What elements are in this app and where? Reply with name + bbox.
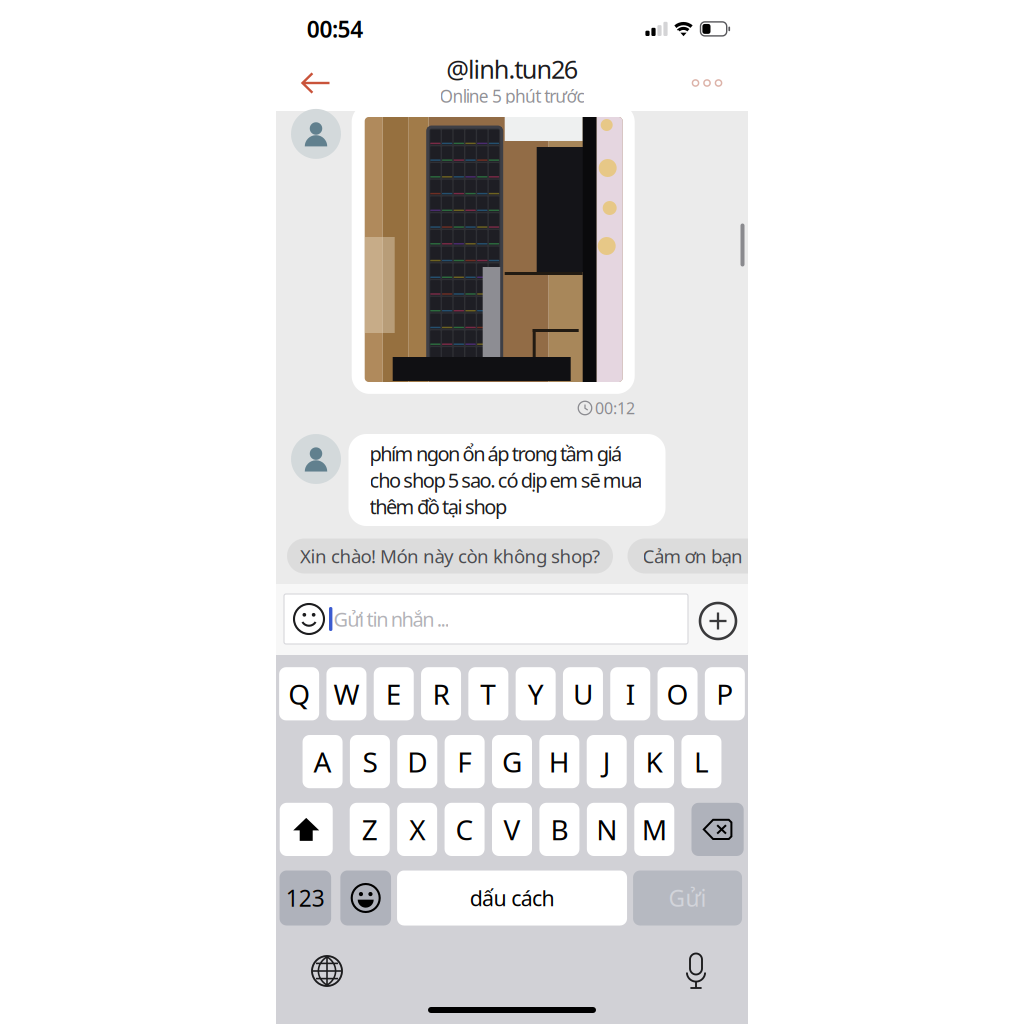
staticText: H [549, 743, 570, 780]
staticText: dấu cách [470, 884, 554, 912]
button[interactable]: N [587, 803, 627, 856]
staticText: N [596, 811, 617, 848]
staticText: J [603, 743, 611, 780]
staticText: V [503, 811, 520, 848]
button[interactable]: E [374, 667, 414, 720]
staticText: phím ngon ổn áp trong tầm giá cho shop 5… [369, 440, 642, 520]
button[interactable]: B [539, 803, 579, 856]
staticText: C [456, 811, 474, 848]
staticText: Y [528, 675, 544, 712]
button[interactable]: Backspace [691, 803, 744, 856]
button[interactable]: Change keyboard [303, 949, 351, 993]
staticText: P [716, 675, 733, 712]
button[interactable]: C [445, 803, 485, 856]
button[interactable]: Back [288, 60, 344, 106]
staticText: G [502, 743, 522, 780]
button[interactable]: I [610, 667, 650, 720]
staticText: I [626, 675, 635, 712]
staticText: T [480, 675, 496, 712]
button[interactable]: S [350, 735, 390, 788]
button[interactable]: More options [681, 61, 733, 105]
button[interactable]: U [563, 667, 603, 720]
staticText: Online 5 phút trước [440, 84, 584, 107]
staticText: S [362, 743, 377, 780]
button[interactable]: A [303, 735, 343, 788]
staticText: Q [288, 675, 310, 712]
button[interactable]: Dictate [672, 949, 720, 993]
staticText: K [646, 743, 663, 780]
button[interactable]: J [587, 735, 627, 788]
button[interactable]: Cảm ơn bạn nhiều nhé! [627, 538, 854, 573]
button[interactable]: V [492, 803, 532, 856]
button[interactable]: Y [516, 667, 556, 720]
button[interactable]: R [421, 667, 461, 720]
button[interactable]: D [397, 735, 437, 788]
button[interactable]: dấu cách [397, 870, 627, 925]
staticText: 00:54 [307, 14, 363, 44]
staticText: 00:12 [595, 397, 635, 419]
staticText: Gửi [668, 883, 706, 913]
staticText: Z [362, 811, 378, 848]
staticText: @linh.tun26 [446, 52, 578, 86]
button[interactable]: F [445, 735, 485, 788]
button[interactable]: Shift [280, 803, 333, 856]
staticText: O [666, 675, 688, 712]
button[interactable]: G [492, 735, 532, 788]
staticText: B [550, 811, 568, 848]
button[interactable]: M [634, 803, 674, 856]
button[interactable]: Z [350, 803, 390, 856]
button[interactable]: 123 [280, 870, 331, 925]
button[interactable]: Gửi [633, 870, 742, 925]
button[interactable]: W [326, 667, 366, 720]
button[interactable]: H [539, 735, 579, 788]
button[interactable]: X [397, 803, 437, 856]
staticText: R [432, 675, 449, 712]
staticText: F [457, 743, 472, 780]
staticText: Xin chào! Món này còn không shop? [300, 544, 600, 568]
button[interactable]: K [634, 735, 674, 788]
button[interactable]: O [657, 667, 697, 720]
button[interactable]: P [705, 667, 745, 720]
staticText: W [333, 675, 359, 712]
button[interactable]: Emoji [340, 870, 391, 925]
button[interactable]: Gửi tin nhắn ... [284, 594, 688, 644]
staticText: E [386, 675, 402, 712]
button[interactable]: Xin chào! Món này còn không shop? [287, 538, 613, 573]
staticText: D [407, 743, 427, 780]
staticText: U [573, 675, 593, 712]
staticText: A [314, 743, 332, 780]
staticText: Cảm ơn bạn nhiều nhé! [642, 544, 839, 568]
button[interactable]: Add attachment [694, 597, 742, 645]
button[interactable]: Q [279, 667, 319, 720]
button[interactable]: T [468, 667, 508, 720]
staticText: Gửi tin nhắn ... [333, 606, 449, 632]
staticText: M [642, 811, 667, 848]
button[interactable]: L [681, 735, 721, 788]
staticText: X [409, 811, 425, 848]
staticText: L [694, 743, 709, 780]
staticText: 123 [286, 883, 325, 913]
